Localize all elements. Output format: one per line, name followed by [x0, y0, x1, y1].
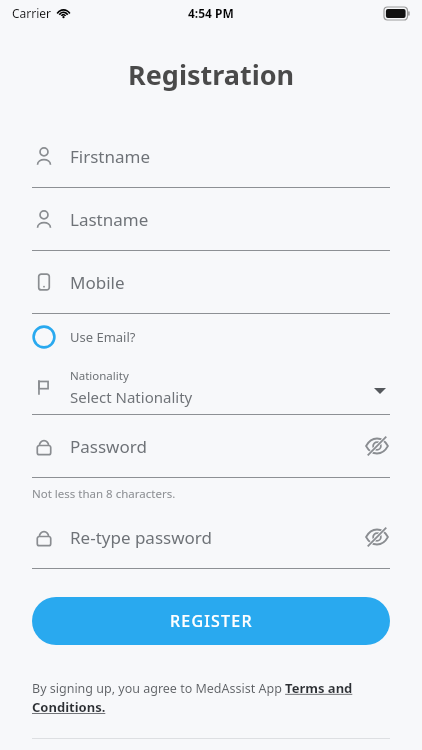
- staticText: 4:54 PM: [188, 5, 234, 21]
- button[interactable]: Password: [0, 415, 422, 477]
- button[interactable]: Lastname: [0, 188, 422, 250]
- staticText: Lastname: [70, 208, 149, 231]
- other: Open nationality list: [370, 377, 390, 397]
- button[interactable]: Nationality: [0, 360, 422, 414]
- staticText: Select Nationality: [70, 387, 193, 407]
- staticText: REGISTER: [170, 610, 253, 632]
- staticText: By signing up, you agree to MedAssist Ap…: [32, 679, 390, 716]
- button[interactable]: Re-type password: [0, 506, 422, 568]
- staticText: Re-type password: [70, 526, 364, 549]
- button[interactable]: Show password: [364, 524, 390, 550]
- staticText: Mobile: [70, 271, 125, 294]
- staticText: Password: [70, 435, 364, 458]
- staticText: Not less than 8 characters.: [32, 486, 176, 502]
- button[interactable]: Show password: [364, 433, 390, 459]
- button[interactable]: Mobile: [0, 251, 422, 313]
- button[interactable]: By signing up, you agree to MedAssist Ap…: [32, 679, 390, 716]
- staticText: Registration: [128, 56, 295, 93]
- staticText: Carrier: [12, 5, 52, 21]
- staticText: Firstname: [70, 145, 151, 168]
- button[interactable]: REGISTER: [32, 597, 390, 645]
- staticText: Use Email?: [70, 328, 136, 346]
- staticText: Nationality: [70, 368, 129, 384]
- button[interactable]: Use Email?: [0, 314, 422, 360]
- button[interactable]: Firstname: [0, 125, 422, 187]
